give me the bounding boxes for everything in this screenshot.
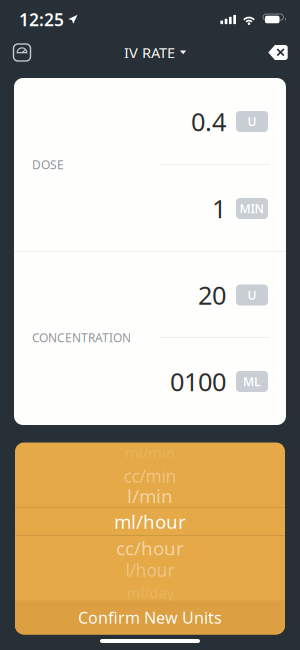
button[interactable]: U	[236, 111, 268, 132]
staticText: cc/hour	[116, 536, 184, 560]
staticText: ml/min	[125, 443, 175, 462]
staticText: U	[247, 113, 256, 129]
button[interactable]: Delete	[260, 39, 296, 66]
button[interactable]: Weight	[4, 39, 40, 66]
staticText: ML	[243, 373, 261, 389]
staticText: CONCENTRATION	[32, 329, 131, 345]
button[interactable]: ML	[236, 371, 268, 392]
staticText: DOSE	[32, 156, 64, 172]
staticText: IV RATE	[124, 43, 175, 62]
staticText: ml/hour	[114, 509, 186, 534]
staticText: l/min	[127, 484, 173, 508]
staticText: ml/day	[126, 583, 173, 602]
staticText: MIN	[239, 200, 264, 216]
staticText: 20	[198, 278, 226, 312]
staticText: 0100	[170, 365, 226, 398]
staticText: U	[247, 287, 256, 303]
staticText: l/hour	[125, 558, 174, 581]
button[interactable]: IV RATE	[113, 39, 187, 66]
staticText: 1	[212, 192, 226, 225]
button[interactable]: Confirm New Units	[15, 600, 285, 634]
button[interactable]: MIN	[236, 198, 268, 219]
staticText: cc/min	[123, 464, 176, 487]
staticText: 0.4	[191, 105, 226, 138]
staticText: 12:25	[19, 8, 64, 31]
button[interactable]: U	[236, 284, 268, 305]
staticText: Confirm New Units	[78, 607, 222, 628]
